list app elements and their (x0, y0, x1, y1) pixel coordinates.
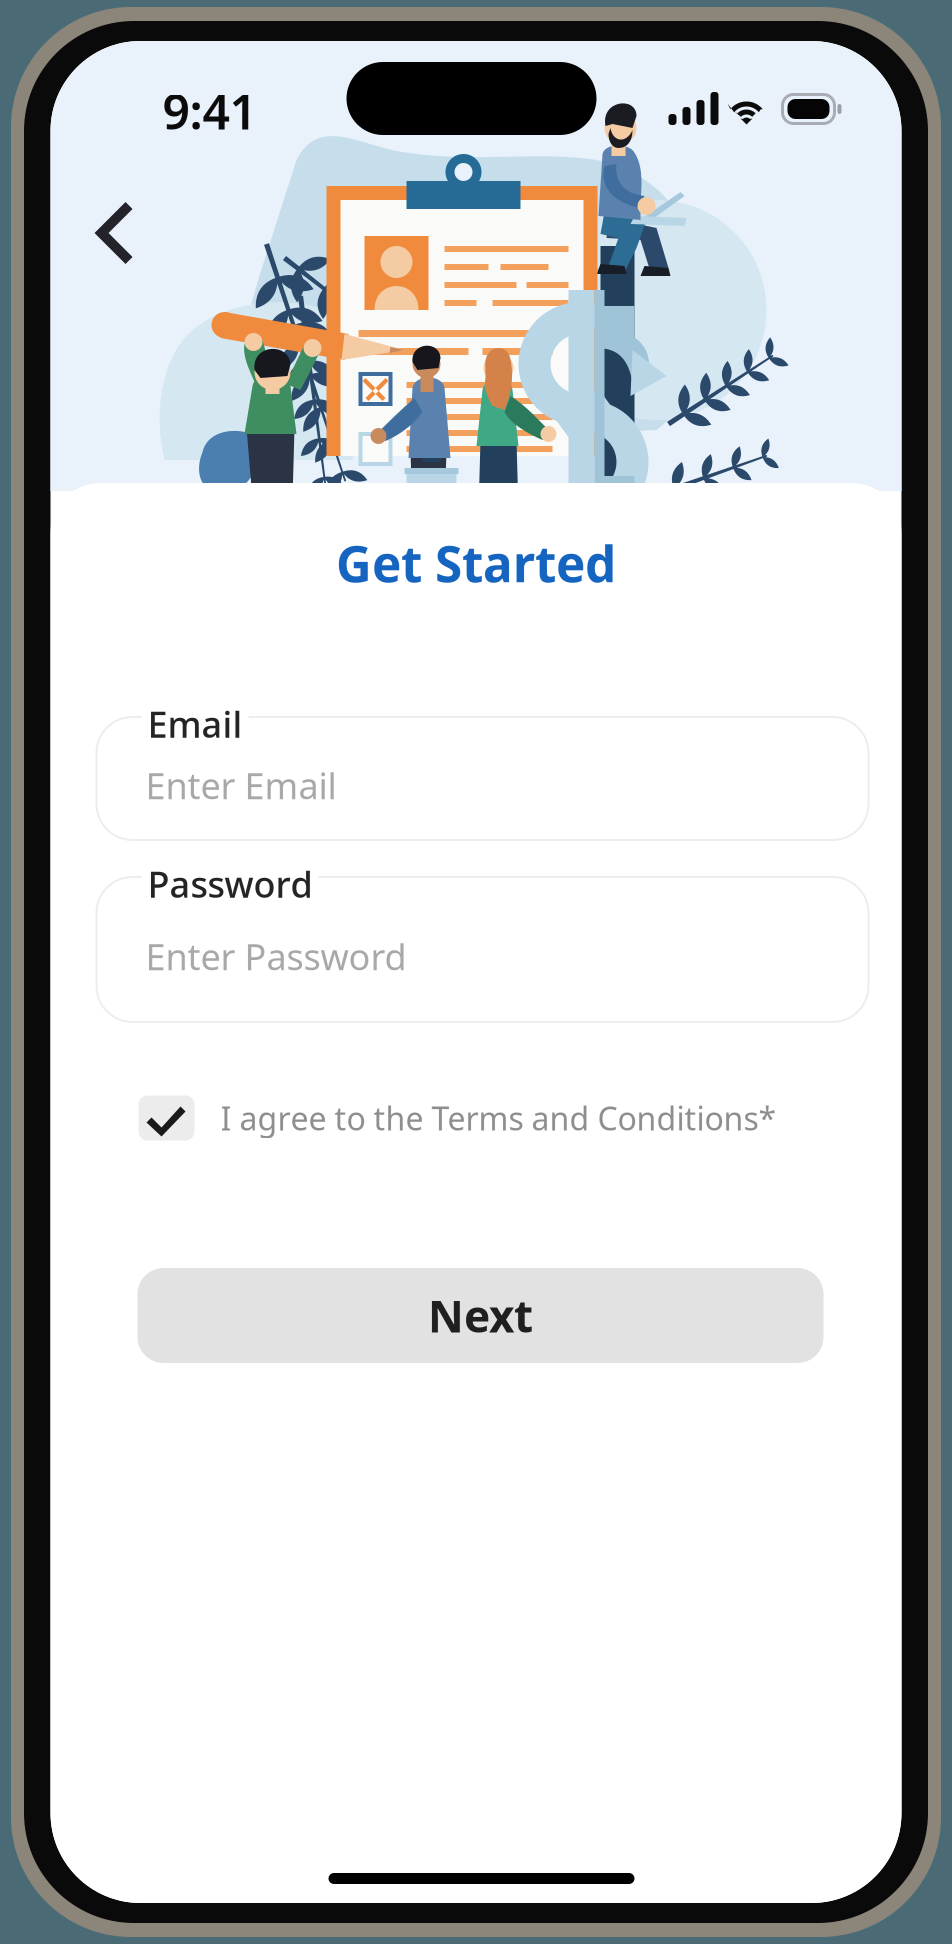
button[interactable]: I agree to the Terms and Conditions* (138, 1089, 850, 1147)
staticText: Enter Password (145, 932, 406, 980)
button[interactable]: Back (71, 191, 155, 275)
button[interactable]: Enter Email (96, 717, 868, 840)
button[interactable]: Enter Password (96, 877, 868, 1022)
button[interactable]: Next (137, 1268, 823, 1363)
staticText: Email (147, 700, 242, 748)
staticText: Get Started (336, 530, 616, 596)
staticText: Enter Email (145, 761, 336, 809)
staticText: 9:41 (162, 79, 256, 143)
staticText: I agree to the Terms and Conditions* (220, 1097, 776, 1139)
staticText: Password (147, 860, 312, 908)
staticText: Next (428, 1286, 533, 1345)
